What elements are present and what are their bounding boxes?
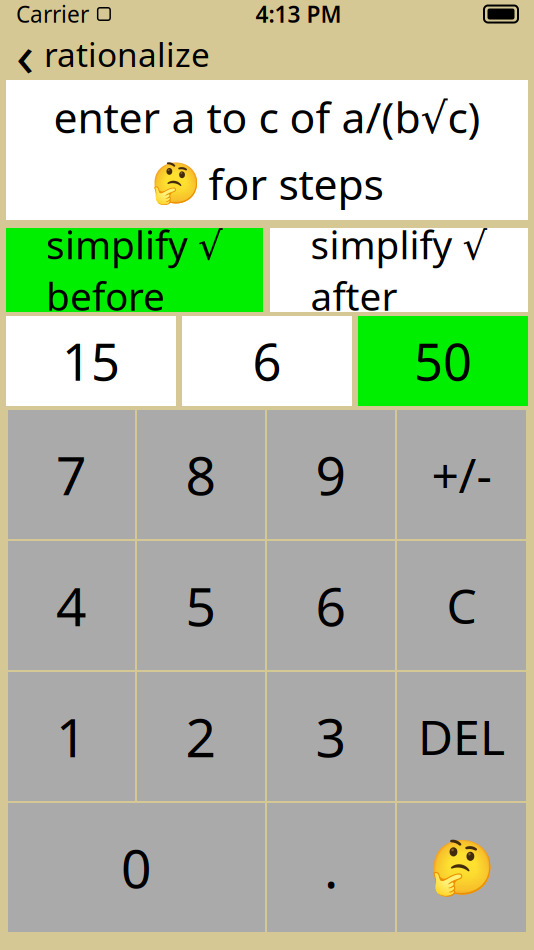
button[interactable]: 6 xyxy=(182,316,352,406)
button[interactable]: 8 xyxy=(137,410,265,539)
button[interactable]: 50 xyxy=(358,316,528,406)
staticText: ‹ xyxy=(16,15,34,93)
staticText: . xyxy=(324,832,338,903)
button[interactable]: 5 xyxy=(137,541,265,670)
staticText: for steps xyxy=(208,155,383,212)
button[interactable]: 6 xyxy=(267,541,395,670)
staticText: 3 xyxy=(315,701,346,772)
button[interactable]: Show steps xyxy=(397,803,526,932)
staticText: 1 xyxy=(56,701,87,772)
staticText: 6 xyxy=(315,570,346,641)
button[interactable]: 3 xyxy=(267,672,395,801)
staticText: simplify √ before xyxy=(46,219,223,321)
staticText: 15 xyxy=(62,327,120,395)
button[interactable]: 7 xyxy=(8,410,135,539)
staticText: 4 xyxy=(56,570,87,641)
staticText: 🤔 xyxy=(150,160,200,206)
button[interactable]: +/- xyxy=(397,410,526,539)
button[interactable]: 2 xyxy=(137,672,265,801)
staticText: simplify √ after xyxy=(310,219,487,321)
button[interactable]: 1 xyxy=(8,672,135,801)
button[interactable]: 15 xyxy=(6,316,176,406)
button[interactable]: 9 xyxy=(267,410,395,539)
staticText: 4:13 PM xyxy=(255,0,341,29)
button[interactable]: . xyxy=(267,803,395,932)
button[interactable]: C xyxy=(397,541,526,670)
staticText: +/- xyxy=(431,443,491,506)
button[interactable]: simplify √ before xyxy=(6,228,263,312)
staticText: 2 xyxy=(185,701,216,772)
staticText: rationalize xyxy=(44,32,210,76)
button[interactable]: 4 xyxy=(8,541,135,670)
staticText: 8 xyxy=(185,439,216,510)
staticText: 50 xyxy=(414,327,472,395)
staticText: Carrier xyxy=(16,0,89,29)
staticText: 7 xyxy=(56,439,87,510)
staticText: C xyxy=(446,574,476,637)
staticText: 5 xyxy=(185,570,216,641)
staticText: 6 xyxy=(252,327,281,395)
staticText: 🤔 xyxy=(428,837,494,898)
button[interactable]: Back to rationalize xyxy=(0,31,226,77)
button[interactable]: 0 xyxy=(8,803,265,932)
staticText: enter a to c of a/(b√c) xyxy=(53,88,480,145)
button[interactable]: DEL xyxy=(397,672,526,801)
staticText: 0 xyxy=(121,832,152,903)
button[interactable]: simplify √ after xyxy=(270,228,528,312)
staticText: 9 xyxy=(315,439,346,510)
staticText: DEL xyxy=(418,705,505,768)
staticText xyxy=(89,0,95,29)
